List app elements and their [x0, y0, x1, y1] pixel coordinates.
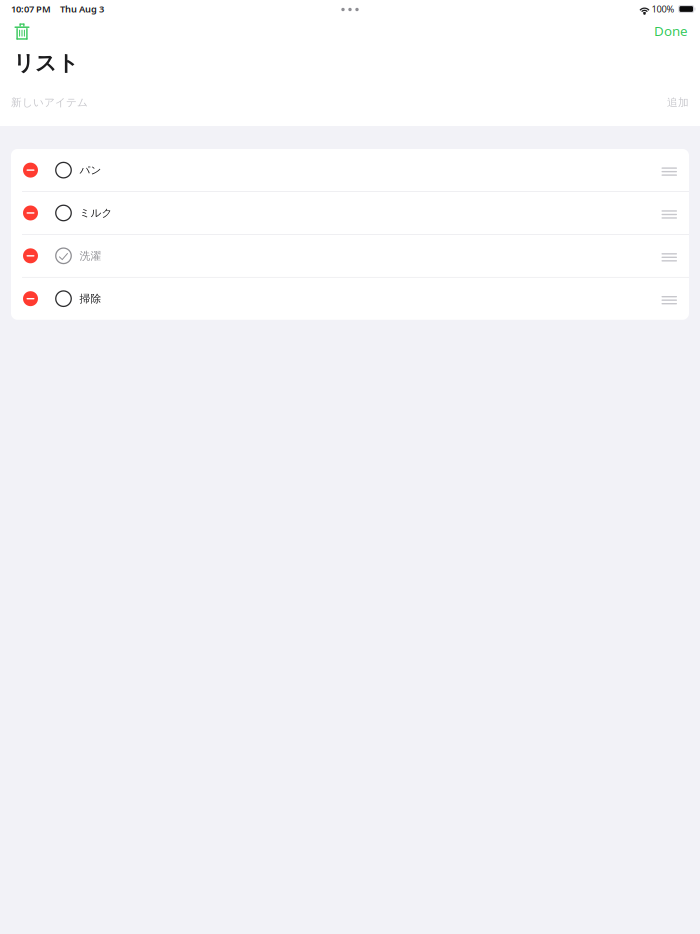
staticText: パン — [79, 164, 101, 177]
button[interactable]: 追加 — [667, 92, 689, 113]
staticText: 100% — [651, 3, 674, 15]
staticText: リスト — [13, 50, 79, 76]
button[interactable]: Mark ミルク complete — [44, 192, 79, 234]
button[interactable]: Delete ミルク — [11, 192, 44, 234]
staticText: 掃除 — [79, 292, 101, 305]
button[interactable]: Mark 洗濯 incomplete — [44, 235, 79, 277]
button[interactable]: Delete all — [0, 17, 37, 39]
button[interactable]: Delete パン — [11, 149, 44, 191]
staticText: Done — [654, 22, 688, 40]
staticText: 新しいアイテム — [11, 96, 88, 109]
staticText: 洗濯 — [79, 249, 101, 262]
staticText: 10:07 PM — [11, 3, 51, 15]
staticText: 追加 — [667, 96, 689, 109]
button[interactable]: Mark 掃除 complete — [44, 278, 79, 320]
button[interactable]: Delete 掃除 — [11, 278, 44, 320]
button[interactable]: Delete 洗濯 — [11, 235, 44, 277]
button[interactable]: Mark パン complete — [44, 149, 79, 191]
staticText: ミルク — [79, 206, 112, 219]
staticText: Thu Aug 3 — [60, 3, 104, 15]
button[interactable]: Done — [654, 14, 700, 42]
